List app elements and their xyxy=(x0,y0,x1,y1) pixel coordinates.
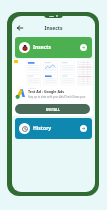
button[interactable]: INSTALL xyxy=(15,104,90,114)
staticText: History xyxy=(33,125,52,132)
button[interactable]: Back xyxy=(14,22,26,34)
staticText: Stay up to date with your Ads/Check/Grow… xyxy=(28,95,86,99)
staticText: Test Ad : Google Ads xyxy=(28,89,64,94)
button[interactable]: History xyxy=(15,118,92,139)
staticText: Insects xyxy=(33,44,51,51)
staticText: Insects xyxy=(12,25,95,32)
button[interactable]: Insects xyxy=(15,37,92,58)
staticText: INSTALL xyxy=(46,107,60,112)
